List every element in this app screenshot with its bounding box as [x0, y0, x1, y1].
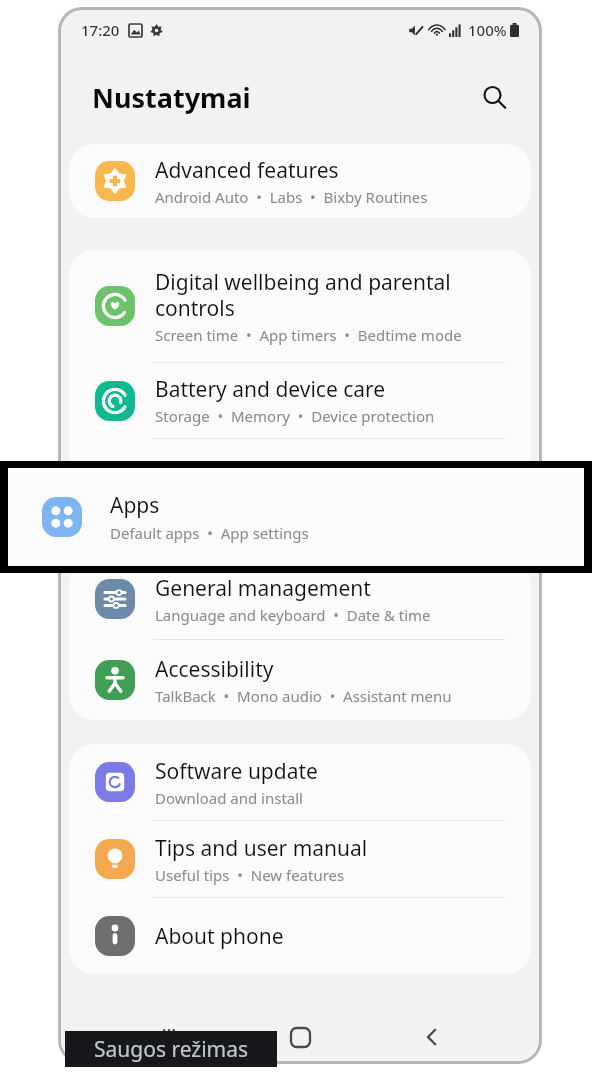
staticText: Battery and device care [155, 375, 386, 404]
button[interactable]: Digital wellbeing and parental controls [69, 250, 531, 362]
button[interactable]: Search [471, 74, 517, 120]
button[interactable]: Battery and device care [69, 363, 531, 438]
staticText: Nustatymai [92, 79, 251, 116]
staticText: Language and keyboard • Date & time [155, 605, 431, 625]
staticText: Apps [155, 463, 205, 492]
button[interactable]: Apps [8, 468, 584, 566]
staticText: Screen time • App timers • Bedtime mode [155, 325, 462, 345]
staticText: TalkBack • Mono audio • Assistant menu [155, 686, 452, 706]
button[interactable]: Home [276, 1013, 324, 1061]
staticText: Digital wellbeing and parental controls [155, 268, 451, 323]
staticText: Saugos režimas [94, 1035, 249, 1064]
button[interactable]: About phone [69, 898, 531, 974]
button[interactable]: Tips and user manual [69, 821, 531, 897]
staticText: Android Auto • Labs • Bixby Routines [155, 187, 428, 207]
staticText: 17:20 [81, 20, 120, 40]
button[interactable]: Apps [69, 439, 531, 537]
button[interactable]: Recent apps [145, 1013, 193, 1061]
button[interactable]: Accessibility [69, 640, 531, 720]
button[interactable]: Software update [69, 744, 531, 820]
staticText: 100% [468, 20, 507, 40]
staticText: Tips and user manual [155, 834, 368, 863]
staticText: General management [155, 574, 371, 603]
staticText: Useful tips • New features [155, 865, 345, 885]
staticText: Software update [155, 757, 318, 786]
staticText: Accessibility [155, 655, 274, 684]
staticText: Default apps • App settings [155, 494, 354, 514]
staticText: Storage • Memory • Device protection [155, 406, 435, 426]
staticText: Apps [110, 491, 160, 520]
staticText: Default apps • App settings [110, 523, 309, 543]
button[interactable]: General management [69, 559, 531, 639]
button[interactable]: Back [408, 1013, 456, 1061]
staticText: Download and install [155, 788, 303, 808]
staticText: Advanced features [155, 156, 339, 185]
button[interactable]: Advanced features [69, 144, 531, 218]
staticText: About phone [155, 922, 284, 951]
